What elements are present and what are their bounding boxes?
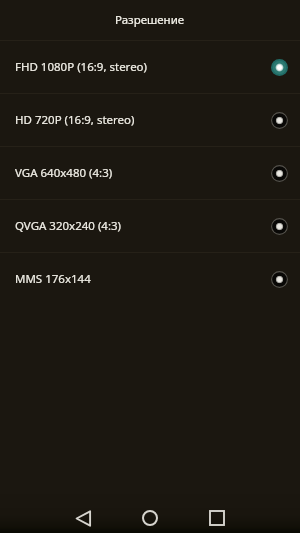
button[interactable]: Recent apps xyxy=(197,498,237,533)
button[interactable]: FHD 1080P (16:9, stereo) xyxy=(0,41,300,93)
staticText: MMS 176x144 xyxy=(15,271,91,287)
button[interactable]: Home xyxy=(130,498,170,533)
staticText: VGA 640x480 (4:3) xyxy=(15,165,113,181)
staticText: HD 720P (16:9, stereo) xyxy=(15,112,135,128)
staticText: FHD 1080P (16:9, stereo) xyxy=(15,59,148,75)
button[interactable]: QVGA 320x240 (4:3) xyxy=(0,200,300,252)
button[interactable]: MMS 176x144 xyxy=(0,253,300,305)
button[interactable]: VGA 640x480 (4:3) xyxy=(0,147,300,199)
staticText: QVGA 320x240 (4:3) xyxy=(15,218,122,234)
button[interactable]: HD 720P (16:9, stereo) xyxy=(0,94,300,146)
staticText: Разрешение xyxy=(115,12,185,28)
button[interactable]: Back xyxy=(63,498,103,533)
